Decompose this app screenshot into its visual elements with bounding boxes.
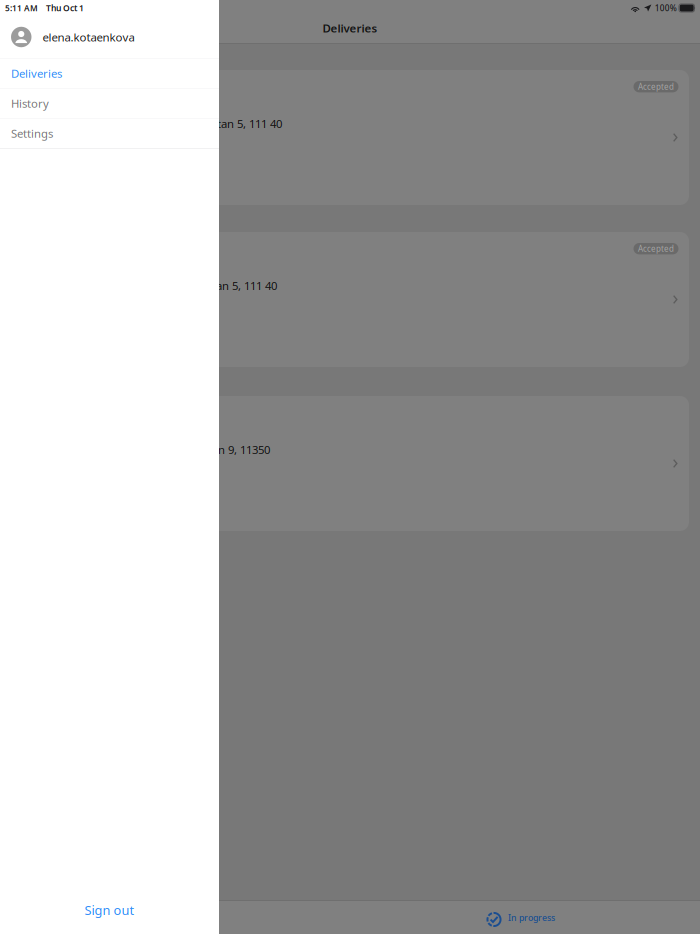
staticText: 100% <box>655 2 677 14</box>
staticText: Leverans till Anna Svensson, Dalagatan 5… <box>31 116 282 131</box>
staticText: Thu Oct 1 <box>46 2 84 14</box>
staticText: elena.kotaenkova <box>42 29 134 45</box>
staticText: 5:11 AM <box>5 2 38 14</box>
button[interactable]: Leverans till Sara Nilsson, Odengatan 9,… <box>11 396 689 531</box>
staticText: History <box>11 95 49 111</box>
staticText: Sign out <box>84 901 134 919</box>
button[interactable]: Settings <box>0 118 219 148</box>
button[interactable]: Sign out <box>0 891 219 929</box>
staticText: Settings <box>11 125 53 141</box>
staticText: In progress <box>508 911 555 923</box>
staticText: Leverans till Erik Lundgren, Dalagatan 5… <box>31 278 277 293</box>
button[interactable]: History <box>0 88 219 118</box>
button[interactable]: New deliveries <box>0 901 350 934</box>
button[interactable]: Accepted <box>11 232 689 367</box>
staticText: Deliveries <box>11 65 62 81</box>
button[interactable]: Accepted <box>11 70 689 205</box>
staticText: Accepted <box>638 243 674 254</box>
button[interactable]: Deliveries <box>0 58 219 88</box>
staticText: Deliveries <box>322 20 377 36</box>
staticText: Leverans till Sara Nilsson, Odengatan 9,… <box>31 442 270 457</box>
staticText: Accepted <box>638 81 674 92</box>
button[interactable]: elena.kotaenkova <box>0 16 219 58</box>
button[interactable]: In progress <box>350 901 700 934</box>
